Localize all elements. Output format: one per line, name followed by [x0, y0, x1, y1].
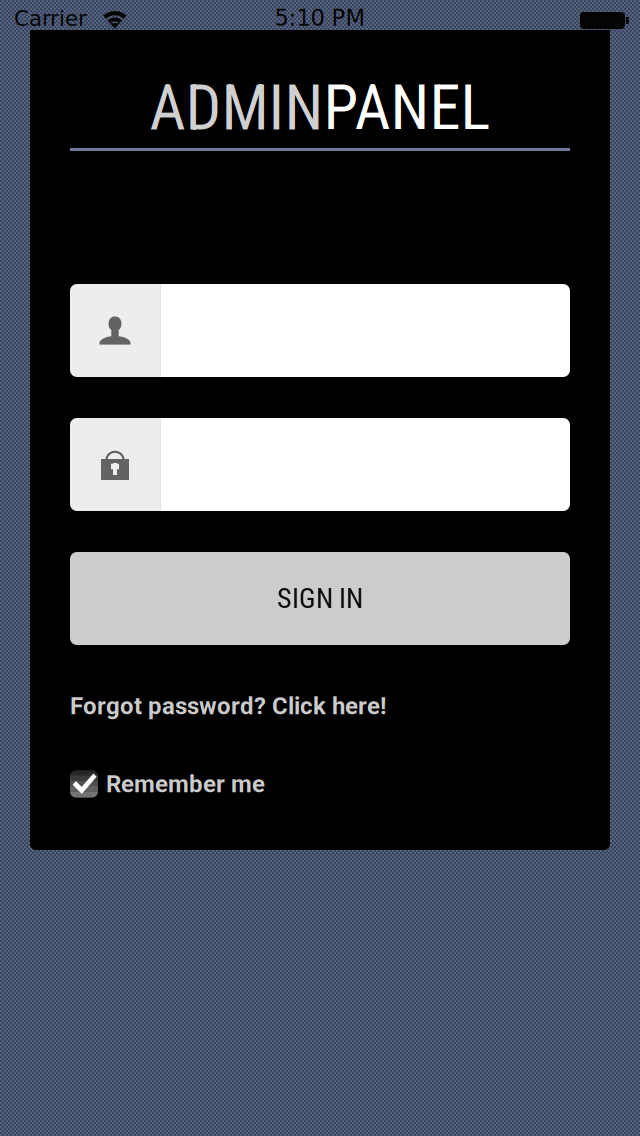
staticText: Forgot password? Click here!: [70, 692, 386, 720]
button[interactable]: Username: [70, 284, 570, 377]
button[interactable]: Password: [70, 418, 570, 511]
button[interactable]: SIGN IN: [70, 552, 570, 645]
staticText: 5:10 PM: [274, 5, 365, 31]
button[interactable]: Remember me: [70, 764, 265, 804]
staticText: PANEL: [323, 71, 490, 145]
staticText: ADMIN: [149, 71, 323, 145]
staticText: Carrier: [14, 6, 87, 31]
staticText: Remember me: [106, 770, 265, 798]
button[interactable]: Forgot password? Click here!: [70, 686, 386, 726]
staticText: SIGN IN: [277, 582, 363, 615]
